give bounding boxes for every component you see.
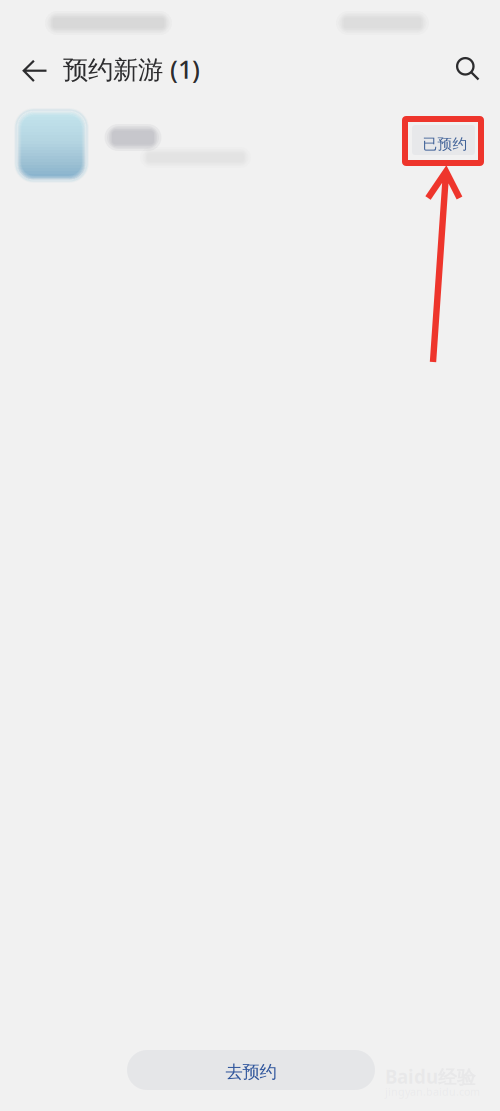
button[interactable]: Reserved game <box>0 106 396 186</box>
staticText: 去预约 <box>225 1061 276 1083</box>
button[interactable]: Back <box>9 45 61 97</box>
button[interactable]: 去预约 <box>127 1050 375 1090</box>
button[interactable]: Search <box>442 43 494 95</box>
button[interactable]: 已预约 <box>412 125 475 155</box>
staticText: Baidu经验 <box>385 1064 476 1089</box>
staticText: 预约新游 (1) <box>63 52 200 86</box>
staticText: 已预约 <box>422 135 467 153</box>
